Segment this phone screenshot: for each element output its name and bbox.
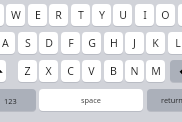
staticText: W — [11, 8, 21, 22]
button[interactable]: J — [125, 32, 144, 54]
staticText: C — [67, 64, 74, 78]
button[interactable]: A — [0, 32, 15, 54]
staticText: H — [110, 36, 118, 50]
button[interactable]: return — [147, 89, 182, 111]
button[interactable]: U — [113, 4, 132, 26]
staticText: J — [133, 36, 136, 50]
staticText: return — [161, 95, 182, 105]
staticText: B — [110, 64, 117, 78]
staticText: S — [25, 36, 31, 50]
button[interactable]: R — [49, 4, 68, 26]
staticText: A — [2, 36, 9, 50]
staticText: Z — [24, 64, 31, 78]
staticText: O — [161, 8, 170, 22]
button[interactable]: O — [156, 4, 175, 26]
staticText: R — [55, 8, 62, 22]
staticText: F — [68, 36, 74, 50]
staticText: T — [78, 8, 84, 22]
button[interactable]: W — [6, 4, 25, 26]
staticText: 123 — [4, 96, 17, 106]
button[interactable]: V — [82, 60, 101, 82]
button[interactable]: T — [71, 4, 90, 26]
button[interactable]: B — [104, 60, 123, 82]
button[interactable]: Backspace — [170, 60, 182, 82]
staticText: I — [143, 8, 147, 22]
button[interactable]: P — [178, 4, 182, 26]
staticText: U — [119, 8, 127, 22]
button[interactable]: space — [39, 89, 143, 111]
staticText: V — [88, 64, 95, 78]
button[interactable]: E — [28, 4, 47, 26]
button[interactable]: L — [168, 32, 182, 54]
staticText: G — [88, 36, 96, 50]
staticText: K — [152, 36, 159, 50]
staticText: X — [45, 64, 52, 78]
staticText: N — [130, 64, 139, 78]
staticText: Y — [99, 8, 105, 22]
button[interactable]: G — [82, 32, 101, 54]
button[interactable]: Numbers — [0, 89, 36, 111]
staticText: L — [175, 36, 181, 50]
button[interactable]: I — [135, 4, 154, 26]
button[interactable]: S — [18, 32, 37, 54]
button[interactable]: X — [39, 60, 58, 82]
button[interactable]: Z — [18, 60, 37, 82]
button[interactable]: K — [146, 32, 165, 54]
button[interactable]: C — [61, 60, 80, 82]
button[interactable]: Q — [0, 4, 4, 26]
button[interactable]: D — [39, 32, 58, 54]
button[interactable]: Shift — [0, 60, 6, 82]
button[interactable]: F — [61, 32, 80, 54]
button[interactable]: Y — [92, 4, 111, 26]
staticText: D — [45, 36, 53, 50]
button[interactable]: H — [104, 32, 123, 54]
staticText: M — [151, 64, 161, 78]
button[interactable]: N — [125, 60, 144, 82]
staticText: E — [35, 8, 41, 22]
button[interactable]: M — [146, 60, 165, 82]
staticText: space — [81, 95, 101, 105]
